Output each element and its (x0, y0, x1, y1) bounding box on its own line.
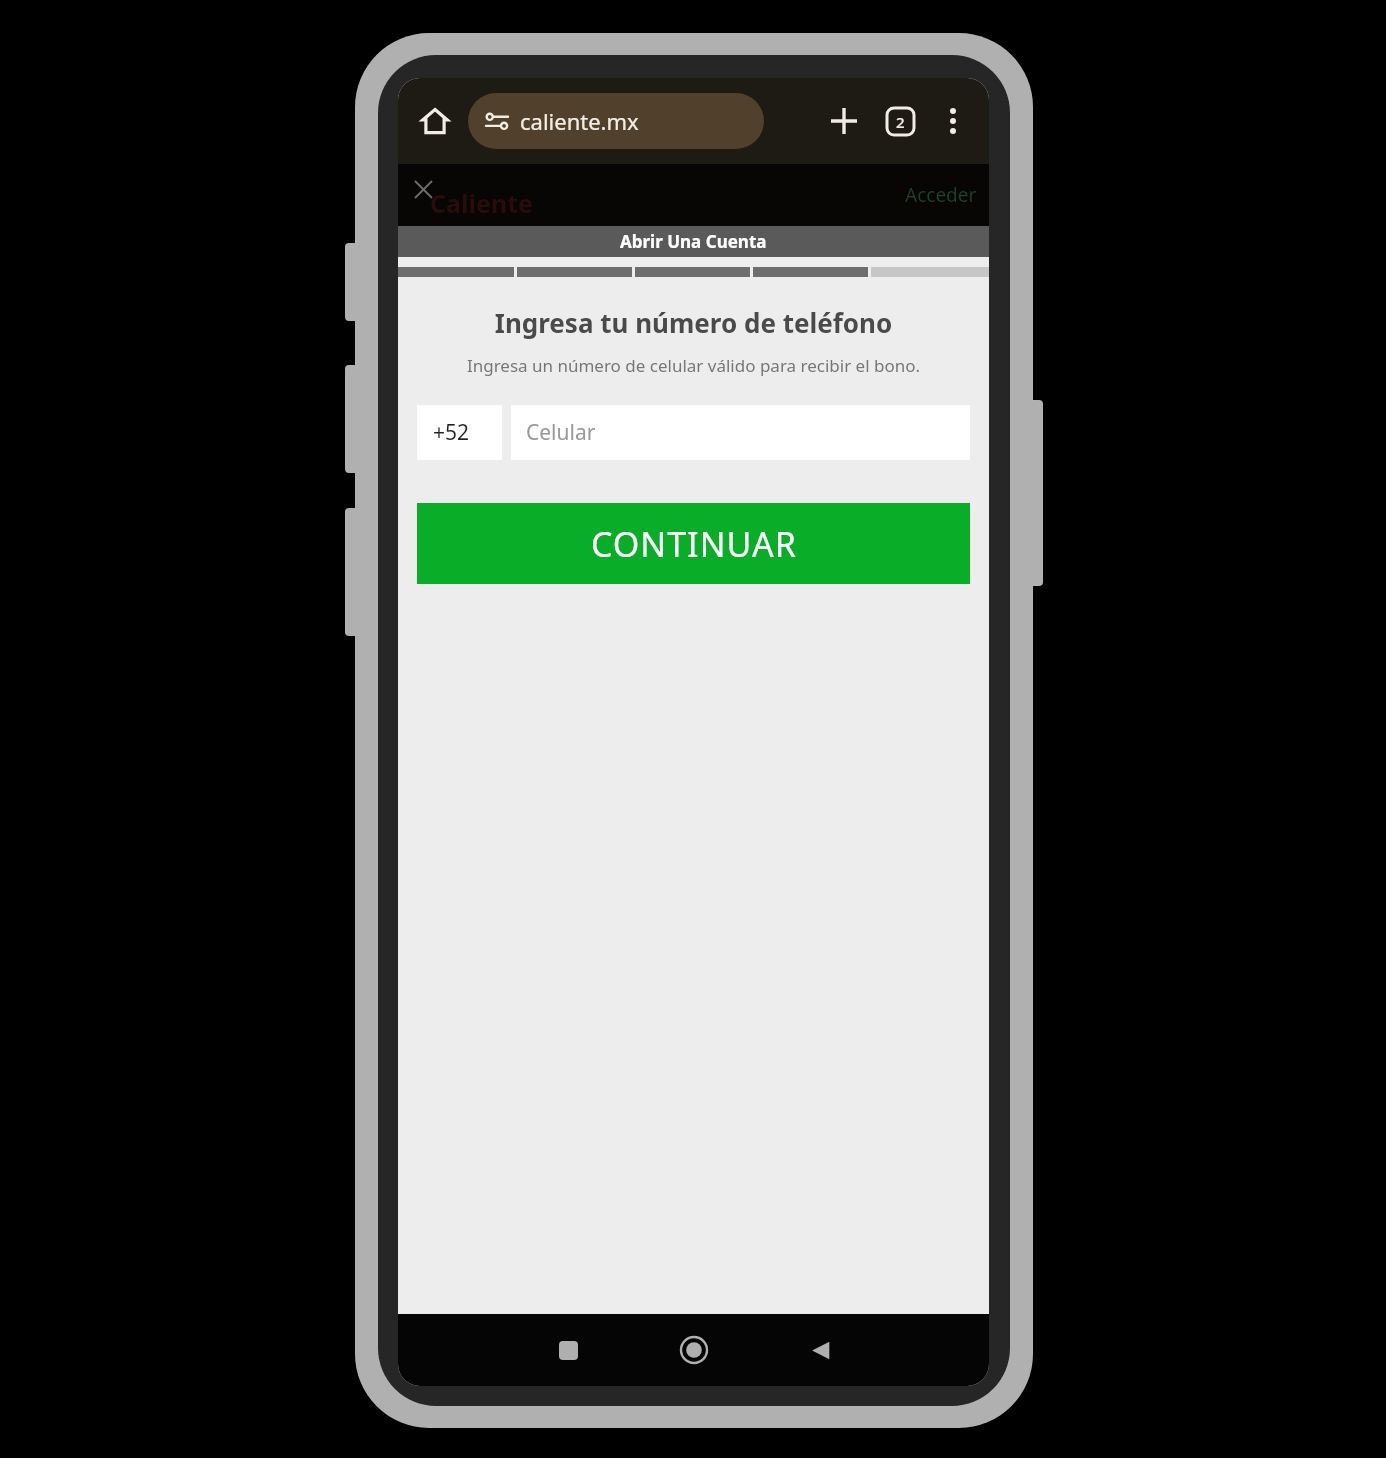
staticText: CONTINUAR (591, 521, 797, 567)
button[interactable]: Back (784, 1314, 856, 1386)
button[interactable]: More options (931, 99, 975, 143)
staticText: +52 (433, 418, 470, 447)
button[interactable]: Acceder (897, 176, 985, 214)
button[interactable]: Tabs, 2 open (877, 98, 923, 144)
button[interactable]: caliente.mx (468, 93, 764, 149)
button[interactable]: Recent apps (532, 1314, 604, 1386)
staticText: Celular (526, 418, 596, 447)
staticText: Abrir Una Cuenta (620, 230, 767, 253)
staticText: 2 (896, 112, 905, 132)
button[interactable]: Close (406, 172, 440, 206)
staticText: Acceder (905, 182, 977, 208)
button[interactable]: CONTINUAR (417, 503, 970, 584)
button[interactable]: New tab (821, 98, 867, 144)
button[interactable]: Home (658, 1314, 730, 1386)
button[interactable]: Celular (511, 405, 970, 460)
staticText: caliente.mx (520, 106, 639, 136)
staticText: Ingresa un número de celular válido para… (398, 354, 989, 377)
button[interactable]: +52 (417, 405, 502, 460)
button[interactable]: Home (412, 98, 458, 144)
staticText: Ingresa tu número de teléfono (398, 305, 989, 340)
staticText: Caliente (430, 186, 533, 220)
